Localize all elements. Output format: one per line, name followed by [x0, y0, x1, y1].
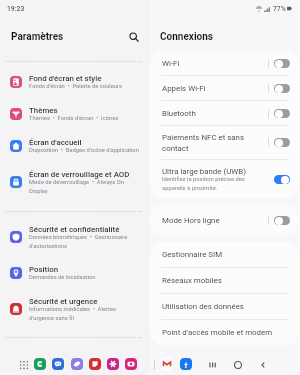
button[interactable]: Internet — [71, 358, 83, 370]
staticText: Thèmes — [29, 106, 58, 115]
staticText: Écran de verrouillage et AOD — [29, 170, 130, 179]
staticText: Données biométriques • Gestionnaire d'au… — [29, 234, 141, 249]
button[interactable]: Point d'accès mobile et modem — [150, 320, 299, 345]
button[interactable]: Bluetooth — [150, 101, 299, 125]
staticText: Fond d'écran et style — [29, 74, 102, 83]
button[interactable]: Écran d'accueil — [0, 130, 150, 162]
button[interactable]: Toutes les applications — [18, 359, 29, 370]
staticText: Réseaux mobiles — [162, 276, 222, 285]
button[interactable]: Applications récentes — [206, 359, 218, 371]
staticText: Disposition • Badges d'icône d'applicati… — [29, 147, 139, 154]
staticText: 19:23 — [7, 5, 25, 13]
button[interactable]: Appareil photo — [125, 358, 137, 370]
button[interactable]: Téléphone — [34, 358, 46, 370]
button[interactable]: Messages — [52, 358, 64, 370]
staticText: Identifiez la position précise des appar… — [162, 176, 259, 191]
button[interactable]: Facebook — [180, 358, 192, 370]
button[interactable]: Activer — [274, 216, 290, 225]
staticText: Position — [29, 265, 59, 274]
button[interactable]: Mode Hors ligne — [150, 205, 299, 235]
staticText: Informations médicales • Alertes d'urgen… — [29, 306, 141, 321]
button[interactable]: Réseaux mobiles — [150, 268, 299, 293]
button[interactable]: Wi-Fi — [150, 51, 299, 75]
staticText: Utilisation des données — [162, 302, 244, 311]
button[interactable]: Activer — [274, 138, 290, 147]
button[interactable]: Appels Wi-Fi — [150, 76, 299, 100]
staticText: Connexions — [160, 31, 213, 43]
button[interactable]: Gestionnaire SIM — [150, 242, 299, 267]
staticText: Wi-Fi — [162, 59, 180, 68]
staticText: Paiements NFC et sans contact — [162, 133, 268, 153]
button[interactable]: Activer — [274, 84, 290, 93]
staticText: Thèmes • Fonds d'écran • Icônes — [29, 115, 119, 122]
button[interactable]: Retour — [257, 359, 269, 371]
button[interactable]: Fond d'écran et style — [0, 66, 150, 98]
button[interactable]: Ultra large bande (UWB) — [150, 160, 299, 198]
staticText: Fonds d'écran • Palette de couleurs — [29, 83, 123, 90]
button[interactable]: Écran de verrouillage et AOD — [0, 162, 150, 202]
staticText: Bluetooth — [162, 109, 196, 118]
button[interactable]: Thèmes — [0, 98, 150, 130]
staticText: 77% — [273, 5, 286, 13]
button[interactable]: Notes — [89, 358, 101, 370]
staticText: Sécurité et confidentialité — [29, 225, 120, 234]
button[interactable]: Gmail — [161, 358, 173, 370]
button[interactable]: Rechercher — [126, 29, 142, 45]
button[interactable]: Activer — [274, 109, 290, 118]
staticText: Appels Wi-Fi — [162, 84, 206, 93]
staticText: Écran d'accueil — [29, 138, 82, 147]
button[interactable]: Utilisation des données — [150, 294, 299, 319]
button[interactable]: Activer — [274, 59, 290, 68]
staticText: Gestionnaire SIM — [162, 250, 223, 259]
button[interactable]: Sécurité et urgence — [0, 289, 150, 329]
button[interactable]: Position — [0, 257, 150, 289]
button[interactable]: Accueil — [232, 359, 244, 371]
staticText: Sécurité et urgence — [29, 297, 98, 306]
button[interactable]: Paiements NFC et sans contact — [150, 126, 299, 159]
staticText: Demandes de localisation — [29, 274, 96, 281]
staticText: Mode de déverrouillage • Always On Displ… — [29, 179, 141, 194]
button[interactable]: Sécurité et confidentialité — [0, 217, 150, 257]
staticText: Point d'accès mobile et modem — [162, 328, 273, 337]
button[interactable]: Activer — [274, 175, 290, 184]
staticText: Ultra large bande (UWB) — [162, 167, 246, 176]
staticText: Mode Hors ligne — [162, 216, 220, 225]
button[interactable]: Galaxy Store — [107, 358, 119, 370]
staticText: Paramètres — [11, 31, 64, 43]
